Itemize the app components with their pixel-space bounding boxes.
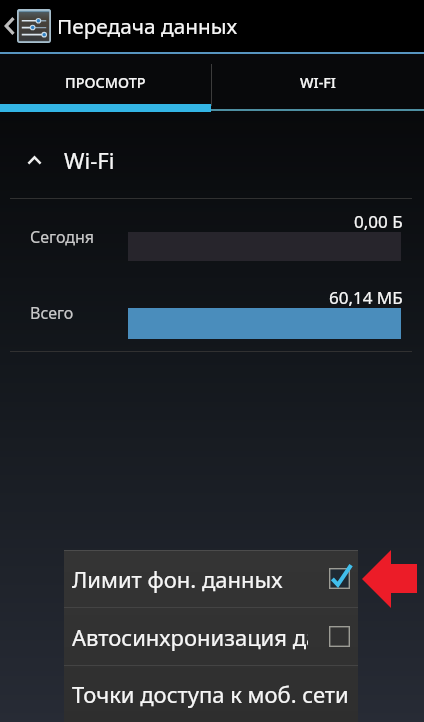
button[interactable]: Сегодня	[0, 199, 424, 275]
staticText: Wi-Fi	[64, 145, 115, 175]
staticText: Лимит фон. данных	[72, 564, 283, 594]
button[interactable]: Лимит фон. данных	[64, 550, 358, 607]
staticText: Автосинхронизация данных	[72, 622, 308, 652]
staticText: 0,00 Б	[354, 210, 403, 233]
staticText: WI-FI	[300, 73, 336, 93]
button[interactable]: Автосинхронизация данных	[64, 608, 358, 665]
button[interactable]: ПРОСМОТР	[0, 54, 211, 112]
button[interactable]: Всего	[0, 275, 424, 351]
staticText: 60,14 МБ	[329, 286, 403, 309]
staticText: Передача данных	[57, 12, 238, 40]
staticText: Всего	[30, 302, 74, 324]
button[interactable]: Wi-Fi	[0, 112, 424, 198]
staticText: Точки доступа к моб. сети	[72, 679, 349, 709]
button[interactable]: WI-FI	[211, 54, 424, 112]
button[interactable]: Back	[0, 0, 51, 52]
staticText: ПРОСМОТР	[65, 73, 146, 93]
staticText: Сегодня	[30, 226, 95, 248]
button[interactable]: Точки доступа к моб. сети	[64, 666, 358, 722]
